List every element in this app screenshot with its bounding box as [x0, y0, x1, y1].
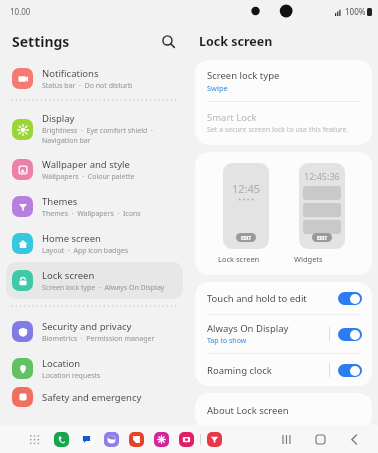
- button[interactable]: Safety and emergency: [6, 387, 183, 407]
- staticText: Lock screen: [218, 254, 274, 264]
- button[interactable]: 12:45: [223, 163, 269, 249]
- staticText: Always On Display: [207, 322, 289, 335]
- button[interactable]: phone: [54, 432, 69, 447]
- staticText: Lock screen: [42, 269, 95, 282]
- staticText: 12:45: [232, 181, 261, 196]
- button[interactable]: theme2: [207, 432, 222, 447]
- staticText: 12:45:36: [304, 170, 340, 182]
- button[interactable]: Touch and hold to edit toggle: [338, 292, 362, 305]
- staticText: Screen lock type · Always On Display: [42, 283, 165, 293]
- staticText: Widgets: [294, 254, 350, 264]
- staticText: Layout · App icon badges: [42, 246, 129, 256]
- staticText: Tap to show: [207, 336, 247, 346]
- staticText: Status bar · Do not disturb: [42, 81, 133, 91]
- staticText: Swipe: [207, 83, 228, 93]
- button[interactable]: Location: [6, 350, 183, 387]
- button[interactable]: Roaming clock toggle: [338, 364, 362, 377]
- button[interactable]: Always On Display: [195, 315, 372, 353]
- button[interactable]: Lock screen: [6, 262, 183, 299]
- staticText: Settings: [12, 32, 70, 51]
- button[interactable]: Wallpaper and style: [6, 151, 183, 188]
- button[interactable]: Roaming clock: [195, 354, 372, 386]
- staticText: 10.00: [10, 6, 31, 17]
- staticText: EDIT: [241, 235, 252, 241]
- button[interactable]: message: [79, 432, 94, 447]
- button[interactable]: 12:45:36: [299, 163, 345, 249]
- staticText: 100%: [345, 6, 366, 17]
- button[interactable]: Display: [6, 107, 183, 151]
- staticText: Screen lock type: [207, 69, 280, 82]
- button[interactable]: Touch and hold to edit: [195, 282, 372, 314]
- staticText: Location requests: [42, 371, 101, 381]
- button[interactable]: camera: [179, 432, 194, 447]
- staticText: Lock screen: [199, 33, 273, 50]
- staticText: Smart Lock: [207, 111, 257, 124]
- staticText: Wallpapers · Colour palette: [42, 172, 135, 182]
- staticText: Roaming clock: [207, 364, 272, 377]
- button[interactable]: EDIT: [236, 233, 256, 242]
- staticText: Home screen: [42, 232, 101, 245]
- button[interactable]: snow: [154, 432, 169, 447]
- button[interactable]: Search: [157, 30, 179, 52]
- button[interactable]: EDIT: [312, 233, 332, 242]
- staticText: Wallpaper and style: [42, 158, 130, 171]
- staticText: Touch and hold to edit: [207, 292, 307, 305]
- button[interactable]: Smart Lock: [195, 102, 372, 145]
- staticText: Location: [42, 357, 81, 370]
- staticText: About Lock screen: [207, 404, 289, 417]
- staticText: EDIT: [317, 235, 328, 241]
- button[interactable]: Security and privacy: [6, 313, 183, 350]
- button[interactable]: Back: [344, 429, 364, 449]
- staticText: Security and privacy: [42, 320, 132, 333]
- staticText: Themes: [42, 195, 78, 208]
- staticText: Notifications: [42, 67, 99, 80]
- button[interactable]: Recents: [276, 429, 296, 449]
- staticText: Safety and emergency: [42, 391, 142, 404]
- button[interactable]: Home screen: [6, 225, 183, 262]
- button[interactable]: Themes: [6, 188, 183, 225]
- button[interactable]: About Lock screen: [195, 393, 372, 430]
- staticText: Themes · Wallpapers · Icons: [42, 209, 141, 219]
- button[interactable]: internet: [104, 432, 119, 447]
- staticText: Biometrics · Permission manager: [42, 334, 155, 344]
- button[interactable]: Notifications: [6, 60, 183, 97]
- staticText: Navigation bar: [42, 136, 91, 146]
- button[interactable]: Screen lock type: [195, 60, 372, 101]
- button[interactable]: Home: [310, 429, 330, 449]
- staticText: Display: [42, 112, 75, 125]
- button[interactable]: Apps: [26, 431, 42, 447]
- button[interactable]: note: [129, 432, 144, 447]
- staticText: Set a secure screen lock to use this fea…: [207, 125, 349, 135]
- staticText: Brightness · Eye comfort shield ·: [42, 126, 153, 136]
- button[interactable]: Always On Display toggle: [338, 328, 362, 341]
